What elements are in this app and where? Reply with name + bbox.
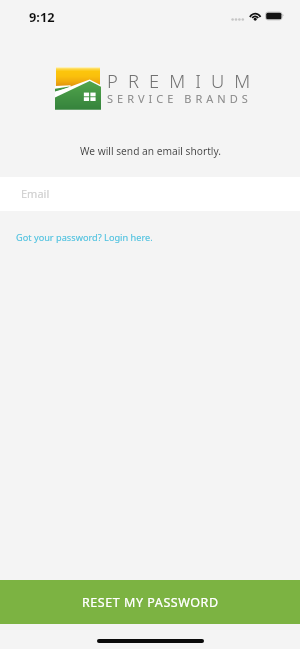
button[interactable]: Email xyxy=(0,177,300,211)
button[interactable]: RESET MY PASSWORD xyxy=(0,580,300,624)
staticText: Got your password? Login here. xyxy=(16,231,153,244)
button[interactable]: Got your password? Login here. xyxy=(10,227,159,248)
staticText: SERVICE BRANDS xyxy=(107,91,252,106)
other: Status icons xyxy=(228,10,286,22)
staticText: PREMIUM xyxy=(107,68,261,93)
staticText: Email xyxy=(21,186,50,201)
staticText: We will send an email shortly. xyxy=(80,144,221,158)
staticText: RESET MY PASSWORD xyxy=(82,594,219,611)
staticText: 9:12 xyxy=(29,8,55,25)
